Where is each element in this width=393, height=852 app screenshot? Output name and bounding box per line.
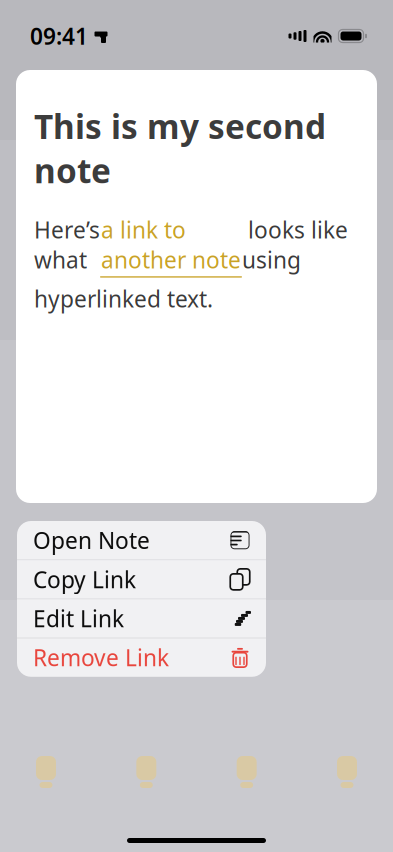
staticText: Copy Link [33,564,136,594]
staticText: looks like using [242,214,348,275]
staticText: This is my second note [34,104,326,192]
button[interactable]: Open Note [17,521,266,559]
staticText: Here’s what [34,214,100,275]
staticText: a link to another note [101,214,241,275]
staticText: hyperlinked text. [34,284,213,314]
button[interactable]: Copy Link [17,560,266,599]
staticText: 09:41 [30,21,88,51]
button[interactable]: Remove Link [17,638,266,677]
staticText: Edit Link [33,603,124,633]
staticText: Remove Link [33,642,169,673]
button[interactable]: a link to another note [100,214,242,278]
staticText: Open Note [33,525,150,555]
button[interactable]: Edit Link [17,599,266,638]
